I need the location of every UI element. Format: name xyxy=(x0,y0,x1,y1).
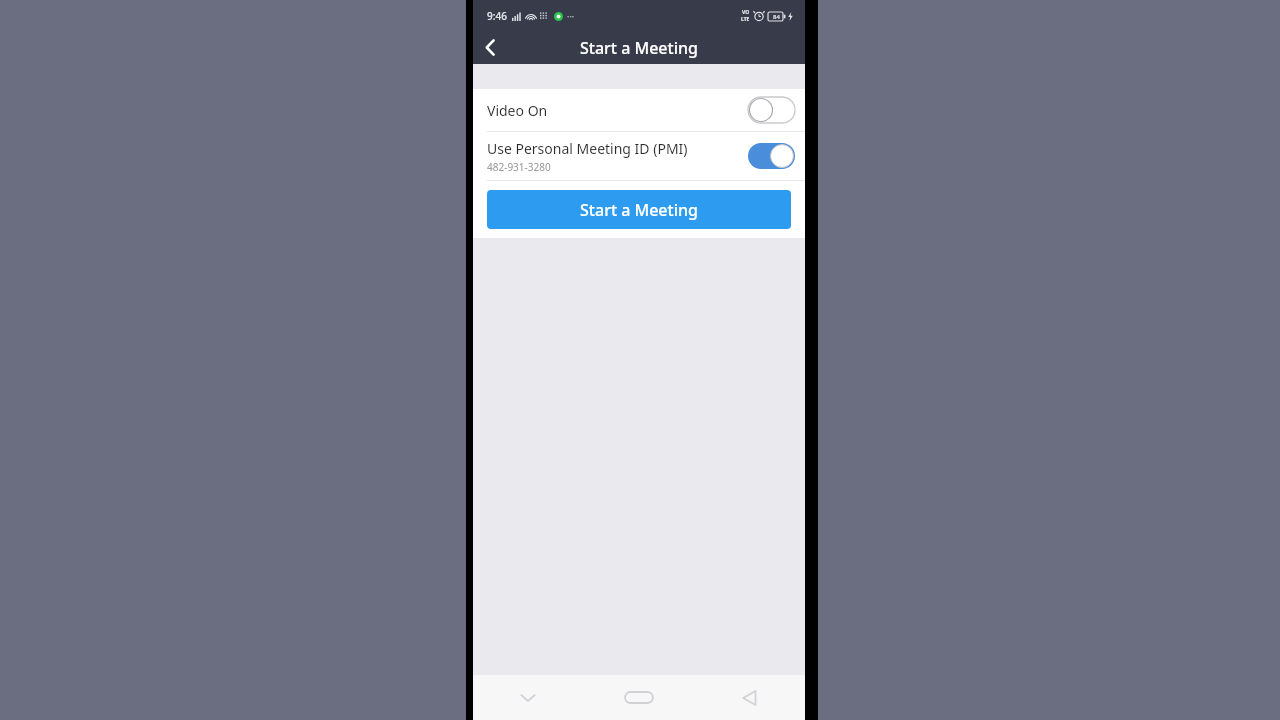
button[interactable]: Back xyxy=(473,31,507,64)
staticText: 9:46 xyxy=(487,9,507,23)
button[interactable]: On xyxy=(748,143,795,169)
button[interactable]: Back xyxy=(694,675,805,720)
staticText: Use Personal Meeting ID (PMI) xyxy=(487,139,688,158)
staticText: Start a Meeting xyxy=(580,37,698,59)
button[interactable]: Video On xyxy=(473,89,805,131)
staticText: LTE xyxy=(741,16,750,23)
staticText: Start a Meeting xyxy=(580,199,698,221)
staticText: VO xyxy=(742,9,750,16)
staticText: 482-931-3280 xyxy=(487,160,551,174)
button[interactable]: Home xyxy=(583,675,694,720)
staticText: Video On xyxy=(487,101,548,120)
staticText: 84 xyxy=(773,13,780,21)
button[interactable]: Use Personal Meeting ID (PMI) xyxy=(473,132,805,180)
staticText: ··· xyxy=(567,10,575,22)
button[interactable]: Off xyxy=(748,97,795,123)
button[interactable]: Start a Meeting xyxy=(487,190,791,229)
